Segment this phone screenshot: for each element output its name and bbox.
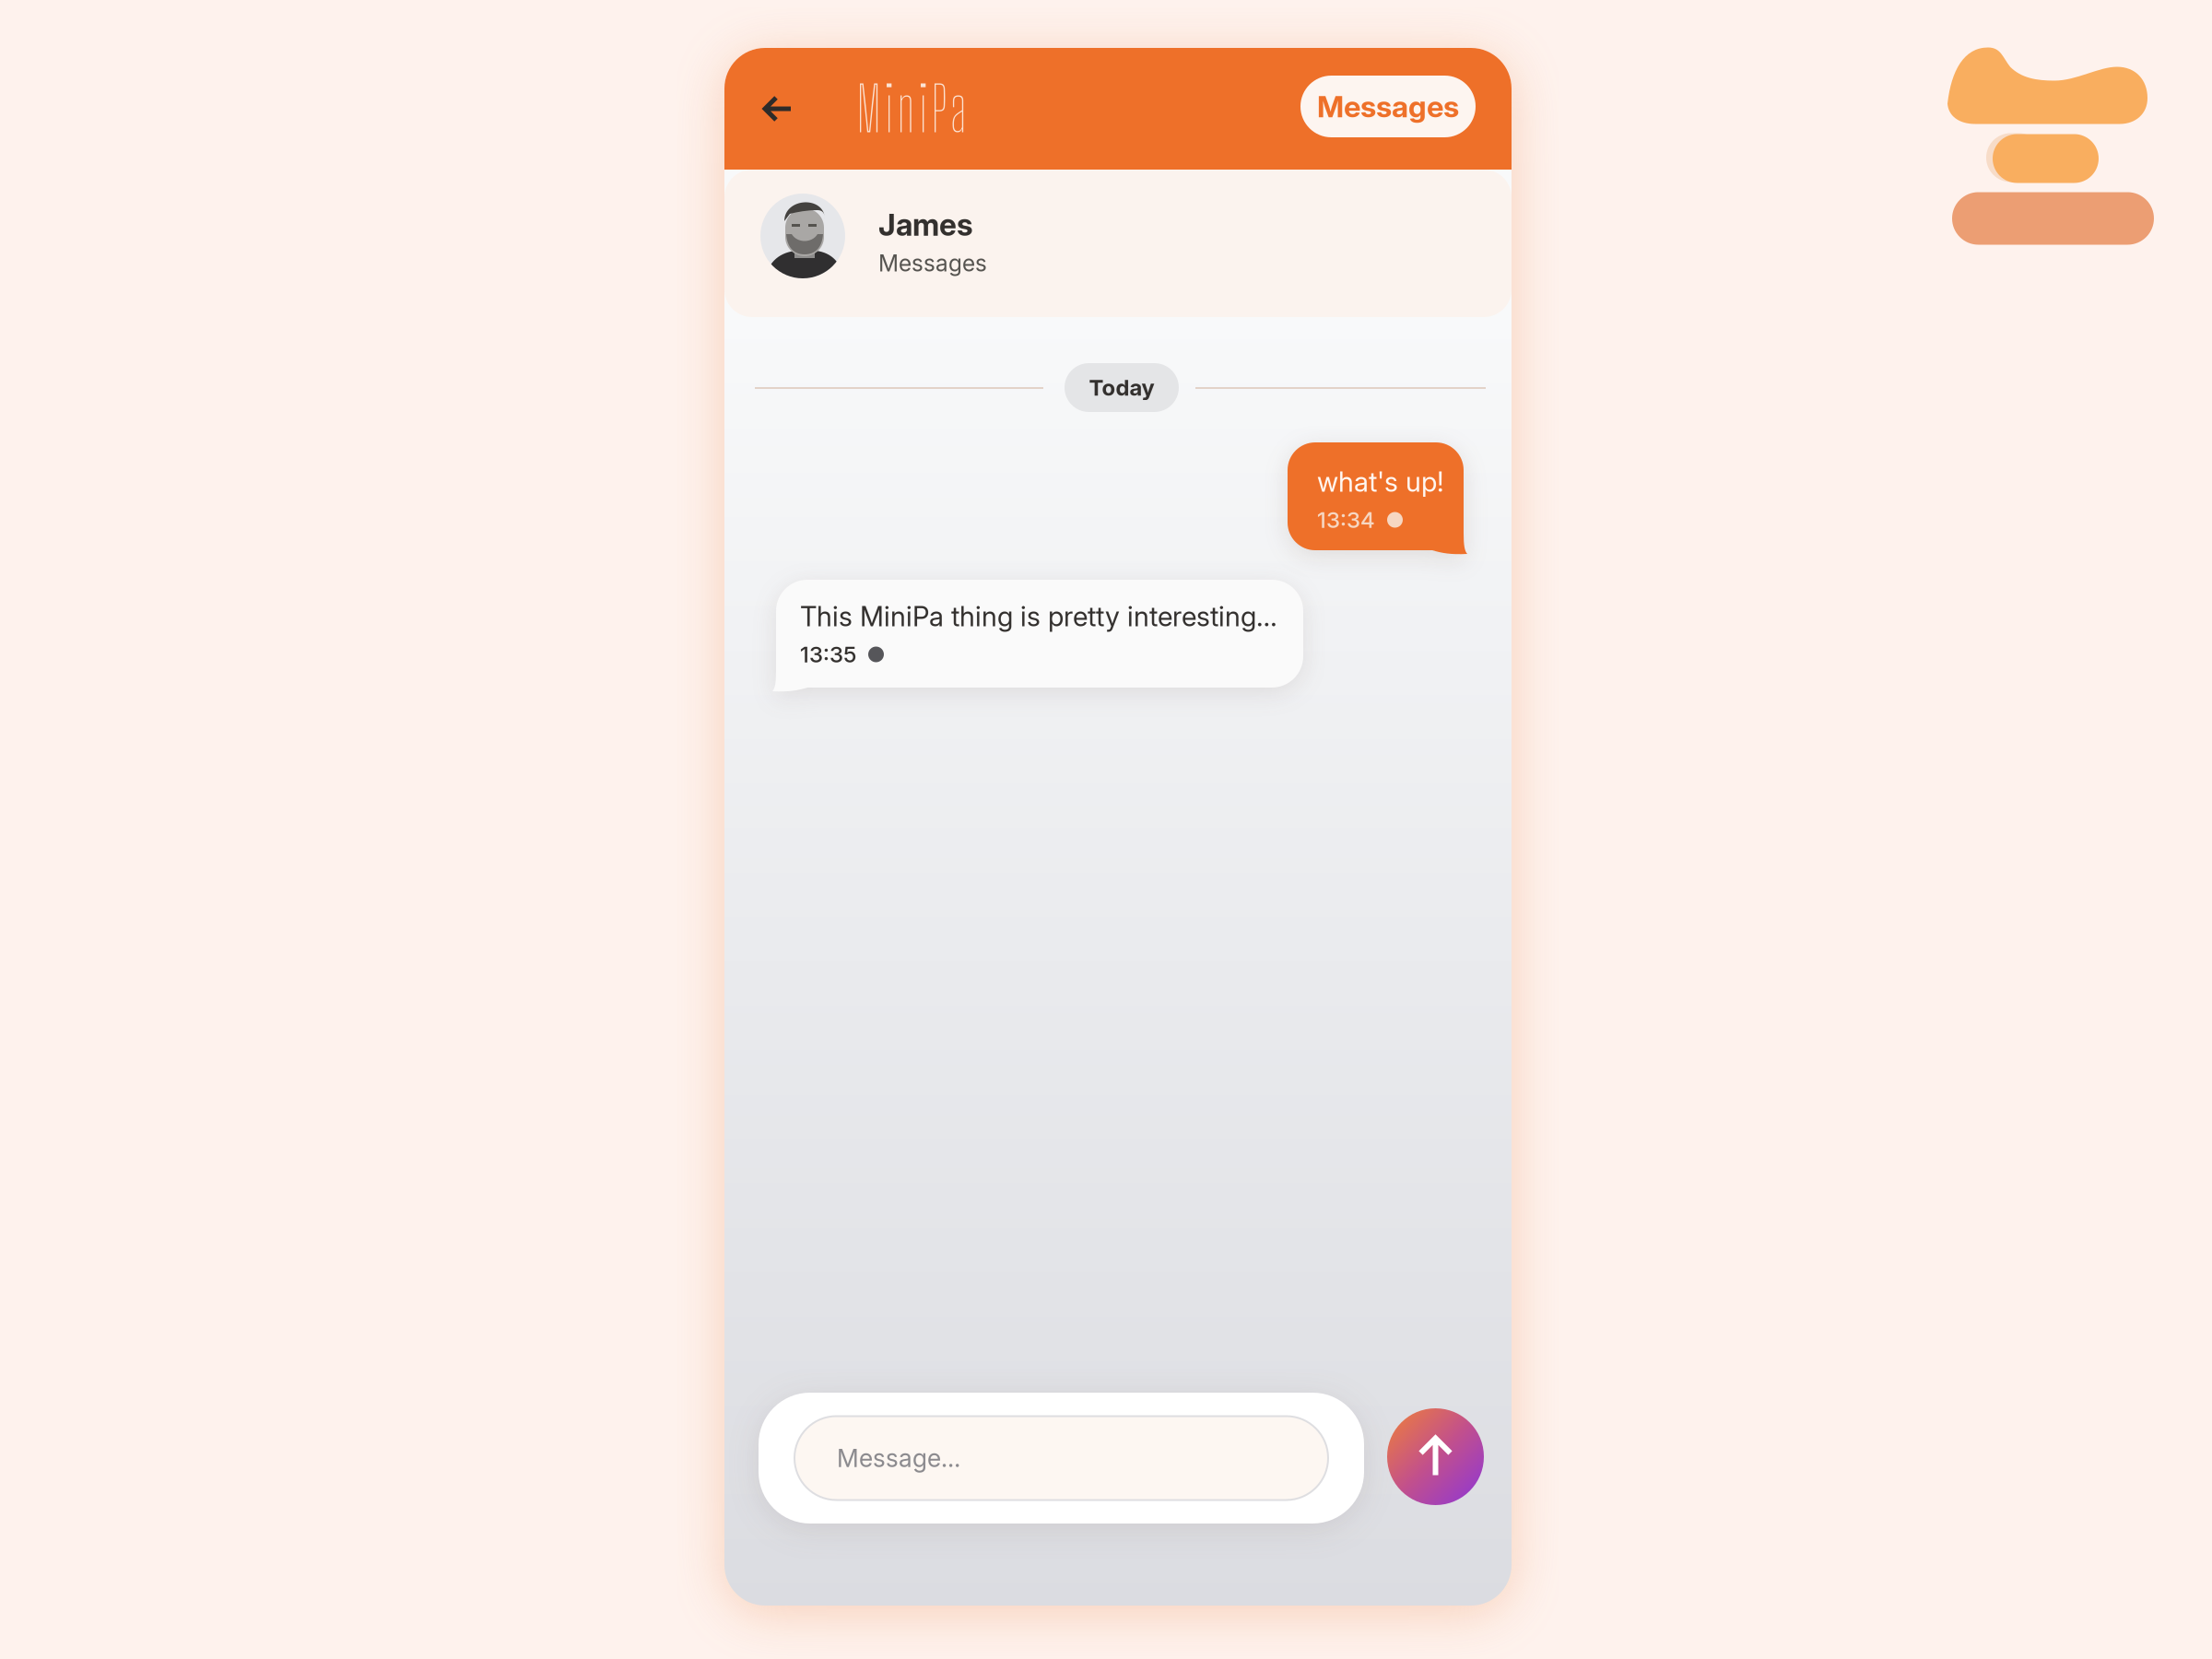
- staticText: what's up!: [1317, 465, 1444, 498]
- staticText: Messages: [878, 249, 987, 277]
- button[interactable]: Messages: [1300, 76, 1476, 137]
- button[interactable]: Send: [1387, 1408, 1484, 1505]
- staticText: Messages: [1317, 89, 1459, 124]
- staticText: 13:34: [1317, 506, 1375, 533]
- button[interactable]: Back: [743, 74, 813, 144]
- staticText: Today: [1089, 374, 1154, 401]
- button[interactable]: James: [724, 170, 1512, 317]
- staticText: 13:35: [800, 641, 856, 668]
- staticText: James: [878, 206, 973, 243]
- staticText: MiniPa: [856, 72, 967, 145]
- staticText: Message…: [837, 1443, 960, 1473]
- staticText: This MiniPa thing is pretty interesting…: [800, 600, 1277, 633]
